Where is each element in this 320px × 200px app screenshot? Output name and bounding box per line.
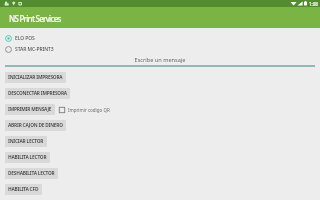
- button[interactable]: Imprimir codigo QR: [59, 107, 110, 113]
- staticText: DESCONECTAR IMPRESORA: [8, 90, 67, 97]
- staticText: 1:08: [309, 1, 318, 7]
- button[interactable]: HABILITA LECTOR: [5, 152, 50, 163]
- staticText: HABILITA CFD: [8, 186, 39, 193]
- staticText: Escribe un mensaje: [0, 56, 320, 64]
- staticText: Imprimir codigo QR: [68, 107, 110, 113]
- staticText: INICIAR LECTOR: [8, 138, 44, 145]
- button[interactable]: ABRIR CAJON DE DINERO: [5, 120, 66, 131]
- button[interactable]: HABILITA CFD: [5, 184, 42, 195]
- staticText: IMPRIMIR MENSAJE: [8, 106, 52, 113]
- button[interactable]: STAR MC-PRINT3: [0, 44, 320, 55]
- staticText: DESHABILITA LECTOR: [8, 170, 55, 177]
- button[interactable]: INICIAR LECTOR: [5, 136, 47, 147]
- button[interactable]: IMPRIMIR MENSAJE: [5, 104, 55, 115]
- staticText: INICIALIZAR IMPRESORA: [8, 74, 63, 81]
- button[interactable]: Escribe un mensaje: [0, 56, 320, 67]
- button[interactable]: INICIALIZAR IMPRESORA: [5, 72, 66, 83]
- staticText: ELO POS: [15, 35, 35, 42]
- staticText: HABILITA LECTOR: [8, 154, 47, 161]
- button[interactable]: DESCONECTAR IMPRESORA: [5, 88, 70, 99]
- button[interactable]: DESHABILITA LECTOR: [5, 168, 58, 179]
- button[interactable]: ELO POS: [0, 33, 320, 44]
- staticText: STAR MC-PRINT3: [15, 46, 54, 53]
- staticText: ABRIR CAJON DE DINERO: [8, 122, 63, 129]
- staticText: NS Print Services: [9, 13, 61, 24]
